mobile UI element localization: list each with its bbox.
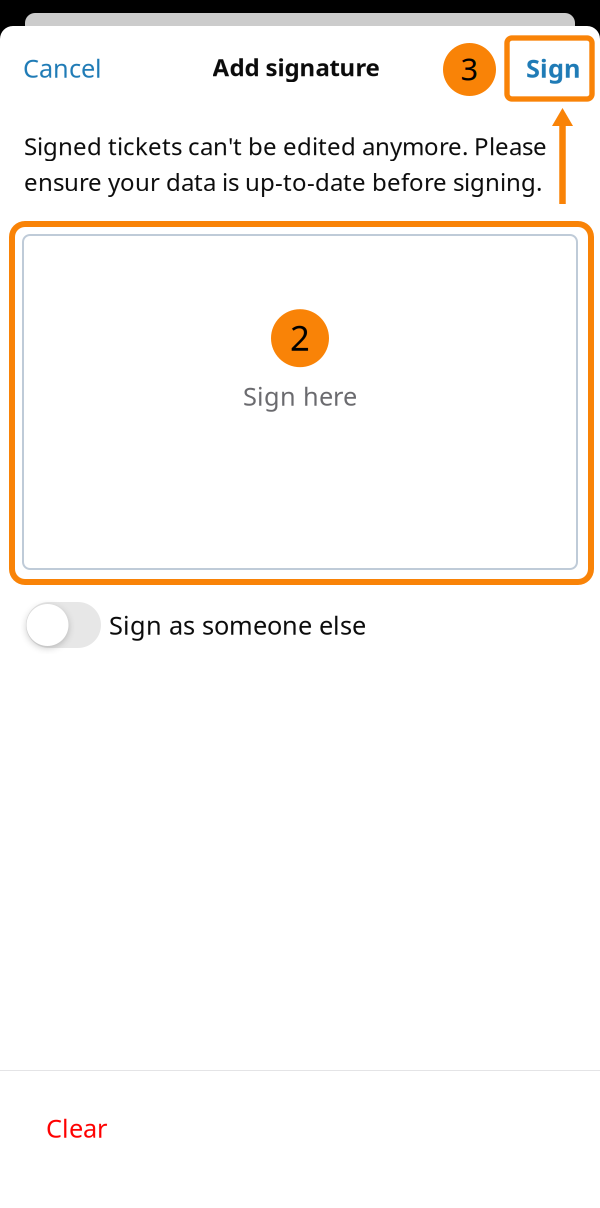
staticText: Sign <box>526 51 580 85</box>
button[interactable]: Sign as someone else <box>26 601 506 649</box>
staticText: 3 <box>460 48 478 89</box>
button[interactable]: Sign <box>508 35 598 101</box>
staticText: Sign as someone else <box>109 608 366 642</box>
staticText: Clear <box>46 1111 107 1145</box>
staticText: Add signature <box>212 51 379 83</box>
staticText: 2 <box>290 314 310 360</box>
button[interactable]: 2 <box>23 235 577 569</box>
button[interactable]: Cancel <box>0 42 133 94</box>
staticText: Sign here <box>243 379 357 413</box>
staticText: Signed tickets can't be edited anymore. … <box>24 130 547 198</box>
button[interactable]: Clear <box>0 1100 196 1156</box>
staticText: Cancel <box>23 51 102 85</box>
